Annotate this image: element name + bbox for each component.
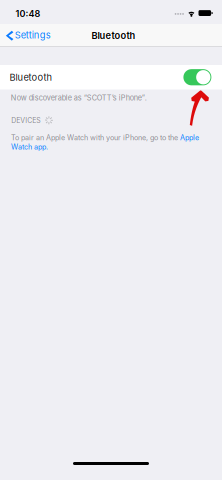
staticText: Apple [180,133,199,142]
staticText: 10:48 [16,8,41,19]
staticText: Now discoverable as “SCOTT’s iPhone”. [11,93,147,102]
staticText: Bluetooth [91,30,135,41]
button[interactable]: Apple [180,133,199,142]
staticText: DEVICES [11,116,40,125]
button[interactable]: Bluetooth [0,65,222,89]
staticText: Watch app. [11,142,48,151]
button[interactable]: Settings [0,24,66,47]
staticText: Bluetooth [9,72,52,83]
button[interactable]: Watch app. [11,142,48,151]
staticText: To pair an Apple Watch with your iPhone,… [11,133,180,142]
staticText: Settings [15,30,51,41]
